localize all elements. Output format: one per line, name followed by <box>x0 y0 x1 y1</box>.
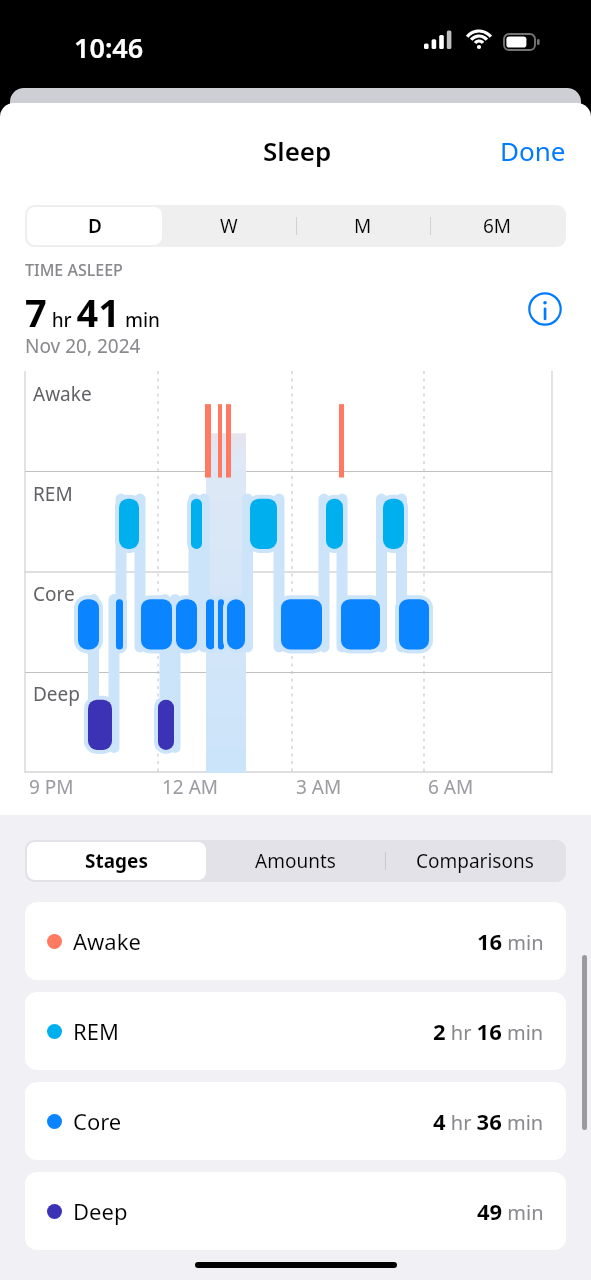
staticText: Nov 20, 2024 <box>25 333 141 359</box>
staticText: 12 AM <box>162 774 219 800</box>
staticText: 16 min <box>477 926 544 956</box>
staticText: 49 min <box>477 1196 544 1226</box>
button[interactable]: Comparisons <box>385 842 564 880</box>
staticText: Sleep <box>263 133 332 168</box>
staticText: Awake <box>73 926 141 956</box>
staticText: Awake <box>33 381 92 407</box>
staticText: 10:46 <box>74 29 144 66</box>
staticText: 2 hr 16 min <box>433 1016 544 1046</box>
staticText: 6 AM <box>428 774 474 800</box>
staticText: Deep <box>73 1196 128 1226</box>
button[interactable]: Amounts <box>206 842 385 880</box>
button[interactable]: Core <box>25 1082 566 1160</box>
button[interactable]: Info <box>525 289 565 329</box>
staticText: Core <box>73 1106 122 1136</box>
staticText: REM <box>33 481 73 507</box>
staticText: REM <box>73 1016 119 1046</box>
button[interactable]: Awake <box>25 902 566 980</box>
staticText: Comparisons <box>416 848 534 874</box>
staticText: W <box>220 213 238 239</box>
staticText: M <box>354 213 372 239</box>
staticText: TIME ASLEEP <box>25 259 123 281</box>
staticText: Stages <box>85 848 148 874</box>
button[interactable]: Stages <box>27 842 206 880</box>
staticText: 3 AM <box>296 774 342 800</box>
staticText: 4 hr 36 min <box>433 1106 544 1136</box>
staticText: Core <box>33 581 75 607</box>
staticText: D <box>88 213 102 239</box>
staticText: 7 hr 41 min <box>25 286 161 338</box>
button[interactable]: REM <box>25 992 566 1070</box>
staticText: Deep <box>33 681 80 707</box>
button[interactable]: W <box>162 207 296 245</box>
button[interactable]: Done <box>486 125 580 176</box>
button[interactable]: Deep <box>25 1172 566 1250</box>
staticText: 6M <box>483 213 512 239</box>
staticText: 9 PM <box>29 774 74 800</box>
button[interactable]: D <box>27 207 162 245</box>
button[interactable]: M <box>296 207 430 245</box>
button[interactable]: 6M <box>430 207 564 245</box>
staticText: Amounts <box>255 848 336 874</box>
staticText: Done <box>500 133 566 168</box>
